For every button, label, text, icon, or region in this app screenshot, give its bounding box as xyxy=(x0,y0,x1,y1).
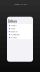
staticText: Updates xyxy=(11,30,18,33)
staticText: Promotions xyxy=(11,33,20,36)
staticText: Archive xyxy=(11,36,17,39)
button[interactable]: Archive xyxy=(8,36,32,39)
button[interactable]: Promotions xyxy=(8,33,32,36)
button[interactable]: Social xyxy=(8,27,32,30)
staticText: iPhone 16 Pro xyxy=(13,3,26,5)
staticText: Inbox xyxy=(8,20,16,23)
button[interactable]: Primary xyxy=(8,24,32,27)
staticText: Primary xyxy=(11,24,17,27)
staticText: Social xyxy=(11,27,15,30)
button[interactable]: Updates xyxy=(8,30,32,33)
